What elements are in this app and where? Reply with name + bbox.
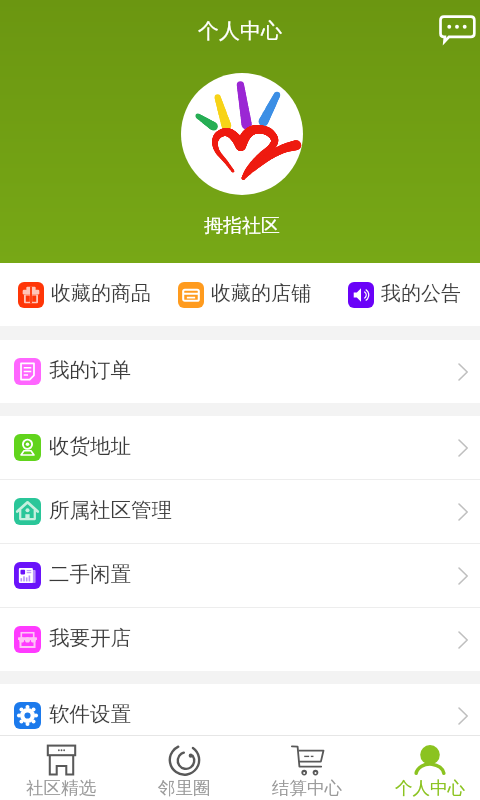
staticText: 拇指社区: [204, 217, 280, 237]
button[interactable]: 收藏的店铺: [160, 263, 320, 326]
staticText: 收藏的商品: [51, 284, 151, 305]
staticText: 我要开店: [49, 629, 131, 650]
staticText: 关于我们: [49, 764, 131, 785]
staticText: 邻里圈: [158, 777, 211, 799]
button[interactable]: 我要开店: [0, 608, 480, 671]
staticText: 社区精选: [26, 777, 96, 799]
staticText: 所属社区管理: [49, 501, 172, 522]
staticText: 我的公告: [381, 284, 461, 305]
staticText: 我的订单: [49, 361, 131, 382]
button[interactable]: 结算中心: [257, 736, 357, 800]
button[interactable]: Messages: [432, 4, 478, 50]
button[interactable]: 收货地址: [0, 416, 480, 479]
staticText: 收货地址: [49, 437, 131, 458]
button[interactable]: 邻里圈: [134, 736, 234, 800]
button[interactable]: 软件设置: [0, 684, 480, 747]
button[interactable]: 收藏的商品: [0, 263, 160, 326]
button[interactable]: 个人中心: [380, 736, 480, 800]
staticText: 结算中心: [272, 777, 342, 799]
staticText: 软件设置: [49, 705, 131, 726]
staticText: 个人中心: [198, 22, 282, 44]
button[interactable]: 二手闲置: [0, 544, 480, 607]
staticText: 二手闲置: [49, 565, 131, 586]
button[interactable]: 我的订单: [0, 340, 480, 403]
staticText: 收藏的店铺: [211, 284, 311, 305]
button[interactable]: 关于我们: [0, 748, 480, 800]
button[interactable]: 我的公告: [320, 263, 480, 326]
button[interactable]: 社区精选: [11, 736, 111, 800]
staticText: 个人中心: [395, 777, 465, 799]
button[interactable]: 所属社区管理: [0, 480, 480, 543]
